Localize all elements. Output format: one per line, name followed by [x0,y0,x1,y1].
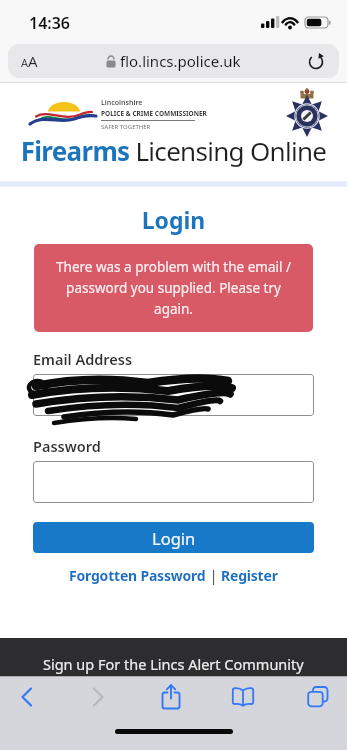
button[interactable] [149,676,193,718]
button[interactable] [76,676,120,718]
staticText: Login [152,527,196,549]
button[interactable]: Register [221,566,278,585]
button[interactable]: Forgotten Password [69,566,206,585]
button[interactable] [308,53,325,70]
button[interactable]: AA [21,51,38,71]
button[interactable]: Login [33,522,314,553]
staticText: Login [0,204,347,235]
staticText: flo.lincs.police.uk [120,51,241,71]
staticText: POLICE & CRIME COMMISSIONER [101,109,207,118]
staticText: Password [33,436,101,456]
staticText: Email Address [33,349,133,369]
button[interactable]: AA [8,44,339,78]
button[interactable] [5,676,49,718]
staticText: 14:36 [29,12,71,34]
staticText: Firearms Licensing Online [0,133,347,168]
staticText: Sign up For the Lincs Alert Community [43,654,304,674]
staticText: There was a problem with the email / pas… [56,258,291,318]
staticText: | [206,566,221,585]
button[interactable] [33,374,314,416]
button[interactable] [221,676,265,718]
staticText: SAFER TOGETHER [101,123,151,131]
button[interactable] [296,676,340,718]
button[interactable] [33,461,314,503]
staticText: Lincolnshire [101,98,143,108]
